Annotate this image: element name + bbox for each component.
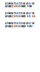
staticText: Browse the titles you've already unlocke… [5, 12, 35, 18]
staticText: Browse the titles you've already unlocke… [5, 22, 34, 28]
staticText: Browse the titles you've already unlocke… [5, 2, 34, 8]
